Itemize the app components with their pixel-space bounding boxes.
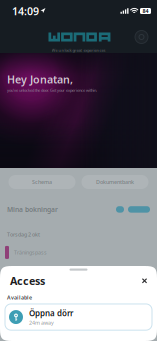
staticText: Öppna dörr bbox=[29, 308, 73, 318]
button[interactable]: Close bbox=[138, 274, 151, 287]
staticText: Available bbox=[7, 294, 32, 301]
button[interactable]: Öppna dörr bbox=[5, 304, 152, 330]
staticText: Schema bbox=[32, 178, 52, 186]
staticText: We unlock great experiences bbox=[51, 47, 105, 53]
staticText: 14:09 bbox=[12, 4, 39, 18]
staticText: 84 bbox=[142, 7, 148, 15]
button[interactable]: Profile bbox=[133, 28, 150, 45]
staticText: Träningspass bbox=[14, 249, 47, 256]
staticText: you've unlocked the door. Get your exper… bbox=[7, 87, 97, 93]
staticText: Mina bokningar bbox=[7, 205, 58, 214]
staticText: Dokumentbank bbox=[96, 178, 134, 186]
staticText: Access bbox=[10, 274, 45, 288]
staticText: Hey Jonatan, bbox=[7, 72, 73, 86]
staticText: Torsdag 2 okt bbox=[7, 231, 40, 238]
staticText: 24m away bbox=[29, 319, 54, 326]
